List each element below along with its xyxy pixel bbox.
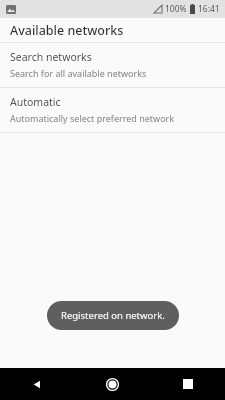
- button[interactable]: Registered on network.: [47, 301, 179, 330]
- button[interactable]: Search networks: [0, 43, 225, 87]
- staticText: Available networks: [10, 22, 124, 39]
- staticText: Automatic: [10, 95, 61, 109]
- button[interactable]: Back: [0, 368, 75, 400]
- staticText: Search networks: [10, 50, 92, 64]
- staticText: Automatically select preferred network: [10, 112, 175, 124]
- button[interactable]: Home: [75, 368, 150, 400]
- staticText: Registered on network.: [61, 309, 165, 322]
- staticText: Search for all available networks: [10, 67, 147, 79]
- button[interactable]: Recent apps: [150, 368, 225, 400]
- staticText: 100%: [165, 3, 187, 15]
- button[interactable]: Automatic: [0, 88, 225, 132]
- staticText: 16:41: [198, 3, 220, 15]
